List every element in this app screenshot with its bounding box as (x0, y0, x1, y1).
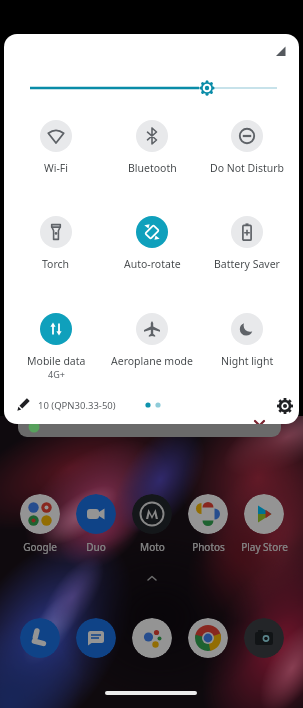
staticText: Bluetooth (128, 161, 177, 175)
staticText: Battery Saver (214, 257, 280, 271)
staticText: Aeroplane mode (111, 354, 193, 368)
staticText: Auto-rotate (124, 257, 181, 271)
button[interactable] (40, 313, 72, 345)
button[interactable] (132, 494, 172, 534)
button[interactable] (40, 216, 72, 248)
button[interactable] (231, 120, 263, 152)
staticText: 4G+ (48, 368, 65, 380)
button[interactable] (136, 313, 168, 345)
button[interactable] (275, 396, 295, 416)
button[interactable] (76, 618, 116, 658)
staticText: Torch (42, 257, 70, 271)
staticText: Do Not Disturb (210, 161, 285, 175)
button[interactable] (231, 313, 263, 345)
staticText: Night light (221, 354, 274, 368)
staticText: Mobile data (27, 354, 86, 368)
staticText: Google (23, 540, 57, 554)
staticText: Moto (140, 540, 165, 554)
staticText: 10 (QPN30.33-50) (38, 399, 116, 412)
button[interactable] (40, 120, 72, 152)
staticText: Photos (192, 540, 225, 554)
button[interactable] (136, 120, 168, 152)
staticText: Duo (86, 540, 106, 554)
button[interactable] (132, 618, 172, 658)
button[interactable] (76, 494, 116, 534)
button[interactable] (136, 216, 168, 248)
button[interactable] (4, 76, 299, 100)
button[interactable] (188, 494, 228, 534)
staticText: Play Store (241, 540, 288, 554)
button[interactable] (20, 618, 60, 658)
button[interactable] (14, 396, 32, 414)
button[interactable] (244, 618, 284, 658)
button[interactable] (20, 494, 60, 534)
button[interactable] (244, 494, 284, 534)
staticText: Wi-Fi (44, 161, 69, 175)
button[interactable] (231, 216, 263, 248)
button[interactable] (188, 618, 228, 658)
